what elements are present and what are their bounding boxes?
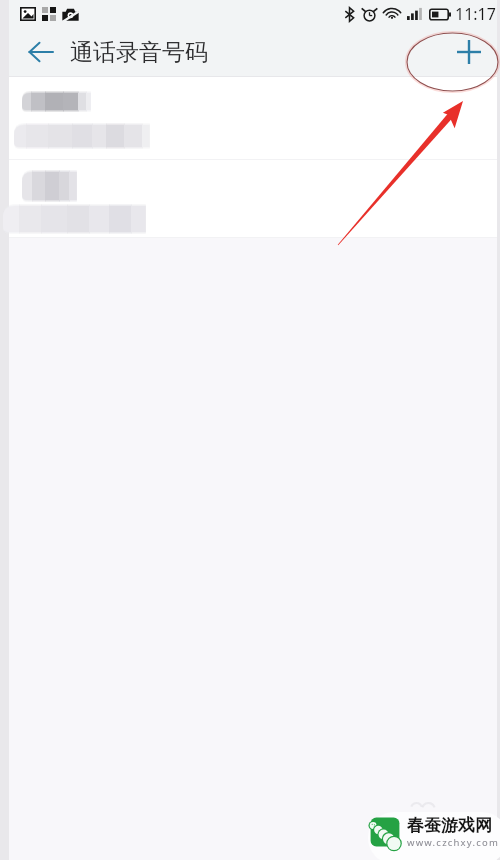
staticText: www.czchxy.com [407,836,500,849]
button[interactable] [9,160,497,237]
button[interactable]: Back [21,33,59,71]
staticText: 春蚕游戏网 [407,815,492,836]
staticText: 11:17 [455,3,496,25]
staticText: 通话录音号码 [70,38,208,67]
button[interactable]: Add [448,31,490,73]
button[interactable] [9,77,497,159]
